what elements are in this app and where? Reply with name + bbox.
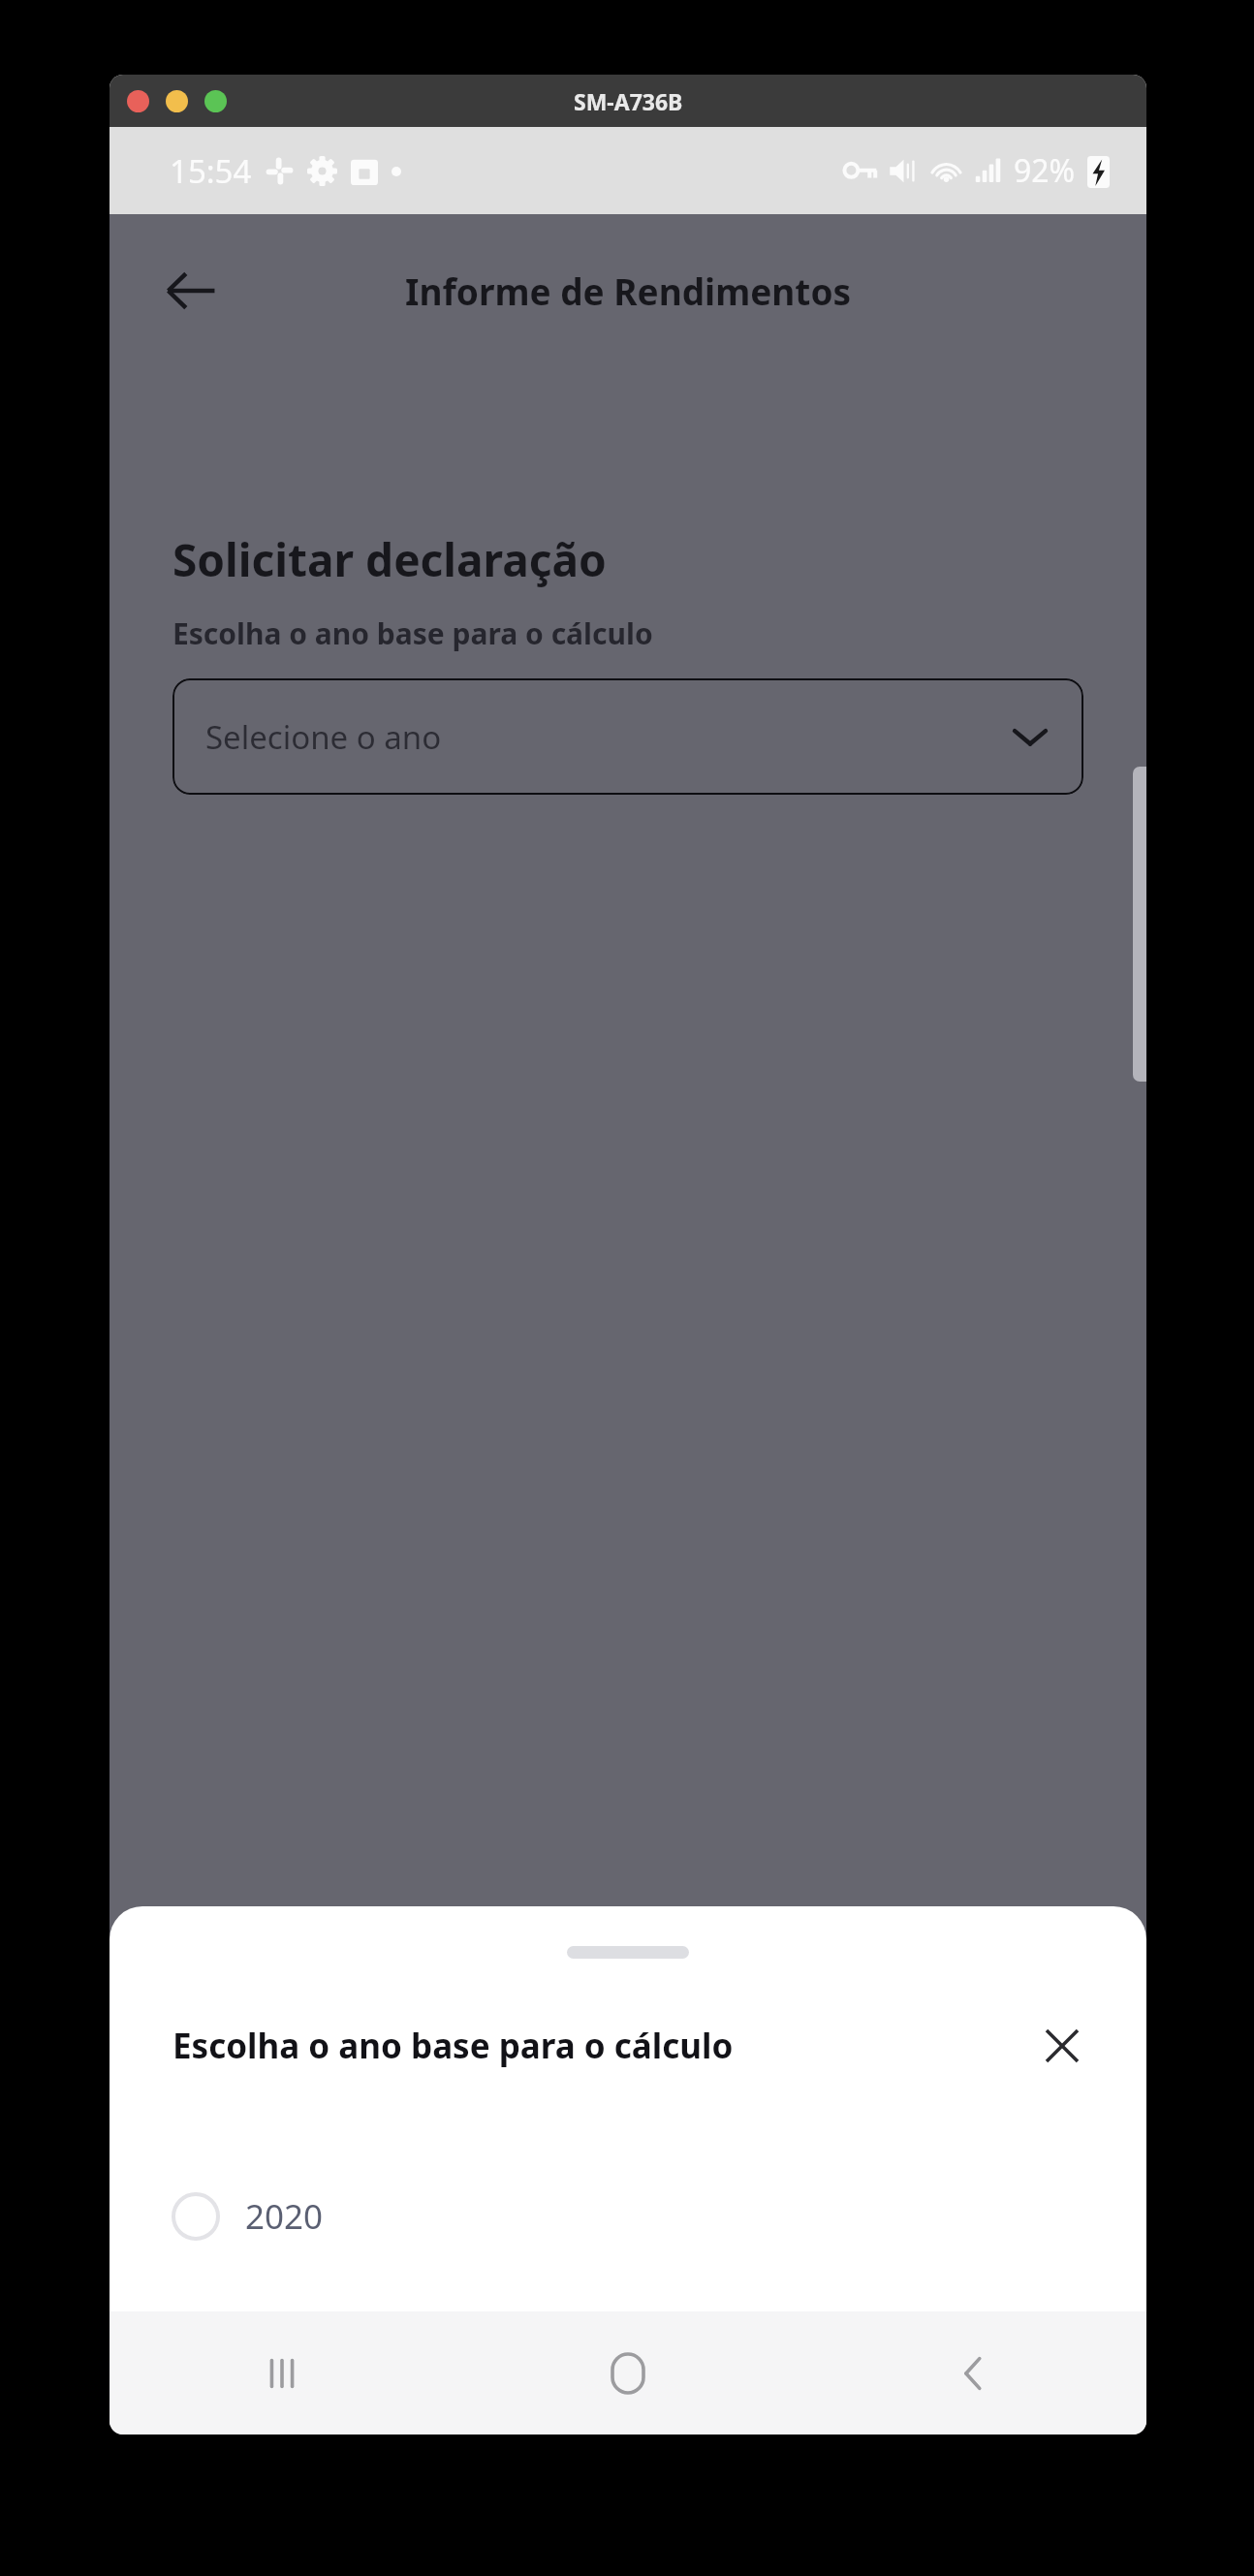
- staticText: Informe de Rendimentos: [405, 267, 852, 315]
- staticText: 92%: [1014, 149, 1076, 192]
- button[interactable]: Selecione o ano: [172, 678, 1083, 795]
- staticText: 15:54: [170, 149, 252, 193]
- button[interactable]: Voltar: [146, 246, 235, 335]
- button[interactable]: Fechar: [1026, 2010, 1098, 2082]
- button[interactable]: Início: [455, 2311, 800, 2435]
- button[interactable]: Voltar: [800, 2311, 1146, 2435]
- staticText: Solicitar declaração: [172, 529, 607, 590]
- button[interactable]: Recentes: [110, 2311, 455, 2435]
- staticText: SM-A736B: [574, 86, 683, 116]
- staticText: Escolha o ano base para o cálculo: [172, 2023, 1026, 2069]
- staticText: Selecione o ano: [205, 715, 1010, 759]
- staticText: Escolha o ano base para o cálculo: [172, 613, 653, 653]
- staticText: 2020: [245, 2193, 324, 2240]
- button[interactable]: 2020: [110, 2166, 1146, 2267]
